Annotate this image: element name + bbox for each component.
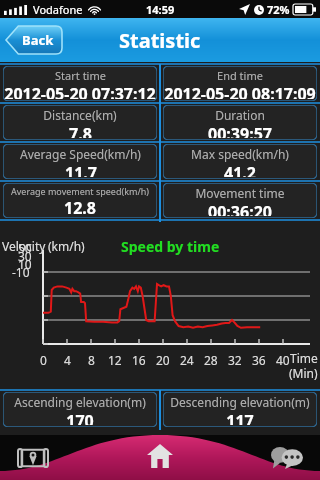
staticText: Descending elevation(m)	[170, 394, 310, 410]
staticText: Max speed(km/h)	[191, 146, 289, 162]
staticText: 16	[132, 352, 146, 368]
button[interactable]: End time	[163, 66, 317, 101]
button[interactable]: Descending elevation(m)	[163, 392, 317, 427]
button[interactable]: Ascending elevation(m)	[3, 392, 157, 427]
staticText: 41.2	[224, 162, 256, 177]
staticText: Start time	[55, 68, 106, 83]
staticText: Distance(km)	[43, 107, 117, 123]
button[interactable]: Back	[6, 26, 62, 54]
staticText: 2012-05-20 08:17:09	[164, 83, 316, 99]
staticText: Speed by time	[121, 237, 220, 256]
staticText: (km/h)	[48, 238, 85, 254]
staticText: Average Speed(km/h)	[20, 146, 141, 162]
staticText: 14:59	[146, 2, 175, 17]
staticText: 2012-05-20 07:37:12	[4, 83, 156, 99]
staticText: Duration	[215, 107, 265, 123]
button[interactable]: Movement time	[163, 183, 317, 218]
button[interactable]: Messages	[268, 439, 306, 477]
staticText: 117	[226, 410, 254, 425]
staticText: Time	[290, 350, 318, 366]
staticText: 10	[18, 256, 32, 272]
staticText: 0	[40, 352, 47, 368]
staticText: Velocity	[2, 238, 46, 254]
staticText: 00:39:57	[208, 123, 272, 138]
staticText: End time	[217, 68, 263, 83]
staticText: 24	[180, 352, 194, 368]
staticText: 8	[88, 352, 95, 368]
staticText: 170	[66, 410, 94, 425]
staticText: 32	[228, 352, 242, 368]
staticText: 4	[64, 352, 71, 368]
staticText: 28	[204, 352, 218, 368]
staticText: Movement time	[195, 185, 285, 201]
button[interactable]: Map	[14, 439, 52, 477]
staticText: 20	[156, 352, 170, 368]
button[interactable]: Home	[140, 436, 180, 476]
staticText: Average movement speed(km/h)	[11, 185, 149, 197]
staticText: Statistic	[119, 27, 201, 54]
button[interactable]: Max speed(km/h)	[163, 144, 317, 179]
staticText: Back	[22, 31, 54, 49]
staticText: 30	[18, 248, 32, 264]
button[interactable]: Duration	[163, 105, 317, 140]
staticText: 12	[108, 352, 122, 368]
staticText: Vodafone	[33, 2, 83, 17]
staticText: 50	[18, 240, 32, 256]
staticText: (Min)	[289, 365, 318, 381]
button[interactable]: Average Speed(km/h)	[3, 144, 157, 179]
staticText: Ascending elevation(m)	[14, 394, 146, 410]
staticText: 7.8	[69, 123, 92, 138]
staticText: 72%	[267, 2, 290, 17]
staticText: 00:36:20	[208, 201, 272, 216]
button[interactable]: Start time	[3, 66, 157, 101]
staticText: 36	[252, 352, 266, 368]
button[interactable]: Average movement speed(km/h)	[3, 183, 157, 218]
staticText: 11.7	[65, 162, 97, 177]
staticText: 40	[276, 352, 290, 368]
button[interactable]: Distance(km)	[3, 105, 157, 140]
staticText: 12.8	[64, 197, 96, 216]
staticText: -10	[12, 264, 30, 280]
